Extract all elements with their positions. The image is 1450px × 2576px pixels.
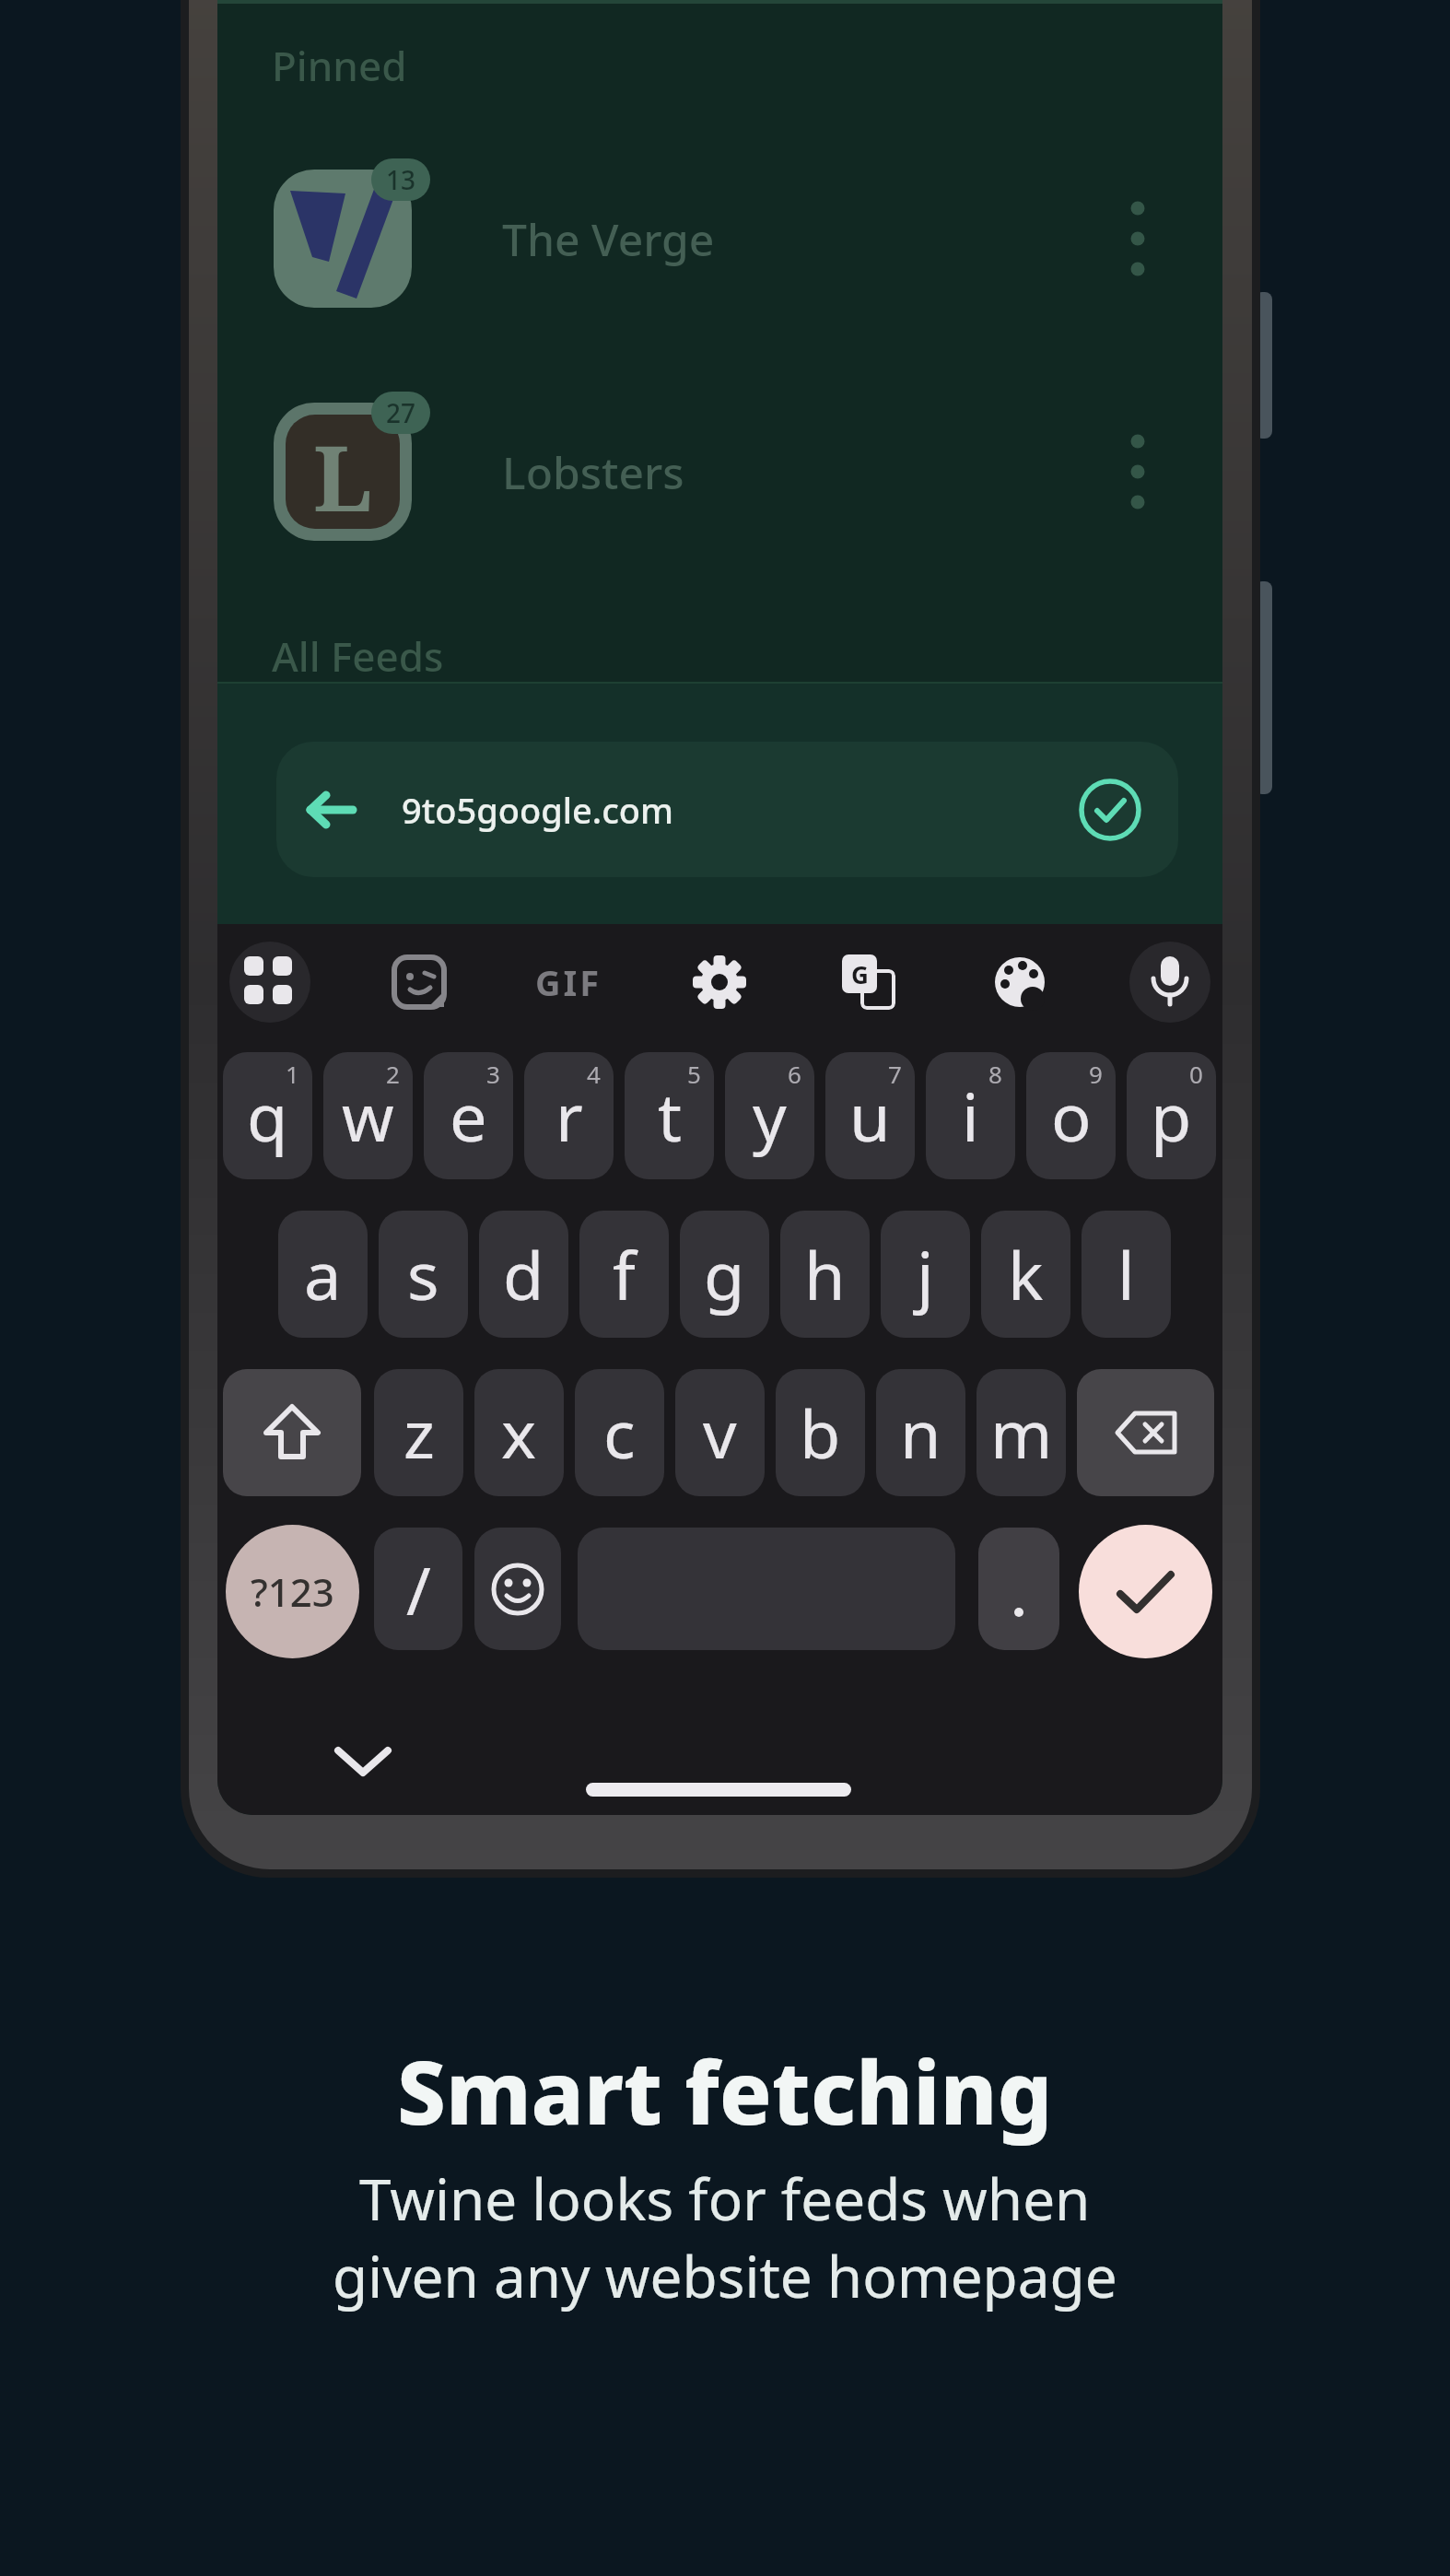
button[interactable]: y (725, 1052, 814, 1179)
staticText: p (1151, 1071, 1192, 1161)
staticText: j (917, 1229, 934, 1319)
staticText: b (800, 1388, 841, 1478)
button[interactable] (692, 954, 747, 1010)
button[interactable]: i (926, 1052, 1015, 1179)
staticText: / (406, 1544, 431, 1634)
staticText: e (450, 1071, 487, 1161)
staticText: h (804, 1229, 846, 1319)
button[interactable]: q (223, 1052, 312, 1179)
staticText: f (613, 1229, 636, 1319)
button[interactable] (978, 1528, 1059, 1650)
staticText: z (403, 1388, 435, 1478)
staticText: 1 (286, 1058, 299, 1090)
staticText: 4 (587, 1058, 601, 1090)
button[interactable]: / (374, 1528, 462, 1650)
staticText: 2 (386, 1058, 400, 1090)
staticText: x (501, 1388, 537, 1478)
staticText: y (753, 1071, 787, 1161)
button[interactable] (223, 1369, 361, 1496)
button[interactable]: n (876, 1369, 965, 1496)
staticText: Lobsters (502, 442, 684, 502)
staticText: Smart fetching (397, 2032, 1053, 2150)
button[interactable]: m (976, 1369, 1066, 1496)
button[interactable] (992, 954, 1047, 1010)
button[interactable]: a (278, 1211, 368, 1338)
staticText: m (990, 1388, 1053, 1478)
button[interactable] (1079, 1525, 1212, 1658)
staticText: ?123 (251, 1565, 334, 1618)
staticText: 5 (687, 1058, 701, 1090)
button[interactable]: f (579, 1211, 669, 1338)
button[interactable]: G (842, 954, 897, 1010)
button[interactable] (217, 381, 1222, 563)
button[interactable]: o (1026, 1052, 1116, 1179)
staticText: u (849, 1071, 891, 1161)
staticText: d (503, 1229, 544, 1319)
button[interactable]: s (379, 1211, 468, 1338)
button[interactable] (1124, 197, 1152, 280)
staticText: G (851, 958, 869, 990)
button[interactable]: r (524, 1052, 614, 1179)
staticText: i (962, 1071, 979, 1161)
button[interactable]: x (474, 1369, 564, 1496)
staticText: l (1117, 1229, 1135, 1319)
button[interactable] (244, 956, 296, 1008)
staticText: t (658, 1071, 682, 1161)
staticText: 9to5google.com (402, 786, 674, 834)
button[interactable] (474, 1528, 561, 1650)
button[interactable] (392, 954, 447, 1010)
button[interactable]: GIF (527, 958, 610, 1006)
button[interactable]: w (323, 1052, 413, 1179)
staticText: w (342, 1071, 394, 1161)
staticText: Twine looks for feeds when (359, 2160, 1091, 2237)
staticText: r (555, 1071, 583, 1161)
button[interactable]: t (625, 1052, 714, 1179)
staticText: Pinned (272, 38, 407, 93)
button[interactable]: p (1127, 1052, 1216, 1179)
staticText: L (313, 415, 373, 529)
button[interactable]: j (881, 1211, 970, 1338)
staticText: given any website homepage (333, 2237, 1117, 2314)
staticText: v (703, 1388, 737, 1478)
button[interactable]: 9to5google.com (276, 742, 1178, 877)
button[interactable] (1124, 430, 1152, 513)
staticText: 8 (988, 1058, 1002, 1090)
button[interactable]: v (675, 1369, 765, 1496)
staticText: a (304, 1229, 342, 1319)
staticText: s (407, 1229, 439, 1319)
staticText: 9 (1089, 1058, 1103, 1090)
staticText: The Verge (502, 209, 715, 269)
button[interactable]: e (424, 1052, 513, 1179)
staticText: o (1051, 1071, 1092, 1161)
staticText: g (704, 1229, 745, 1319)
staticText: 7 (888, 1058, 902, 1090)
button[interactable]: k (981, 1211, 1070, 1338)
staticText: 13 (386, 162, 416, 197)
button[interactable]: u (825, 1052, 915, 1179)
button[interactable]: l (1082, 1211, 1171, 1338)
staticText: 6 (788, 1058, 801, 1090)
button[interactable]: g (680, 1211, 769, 1338)
button[interactable]: ?123 (226, 1525, 359, 1658)
button[interactable] (217, 147, 1222, 330)
staticText: n (900, 1388, 941, 1478)
staticText: q (247, 1071, 288, 1161)
button[interactable]: c (575, 1369, 664, 1496)
button[interactable]: z (374, 1369, 463, 1496)
staticText: 27 (386, 395, 416, 430)
staticText: GIF (535, 958, 602, 1006)
button[interactable]: h (780, 1211, 870, 1338)
staticText: c (603, 1388, 636, 1478)
button[interactable]: d (479, 1211, 568, 1338)
staticText: 3 (486, 1058, 500, 1090)
button[interactable] (1077, 1369, 1214, 1496)
button[interactable] (1144, 954, 1196, 1010)
button[interactable] (337, 1749, 389, 1776)
staticText: k (1008, 1229, 1044, 1319)
staticText: All Feeds (272, 628, 444, 684)
button[interactable]: b (776, 1369, 865, 1496)
staticText: 0 (1189, 1058, 1203, 1090)
